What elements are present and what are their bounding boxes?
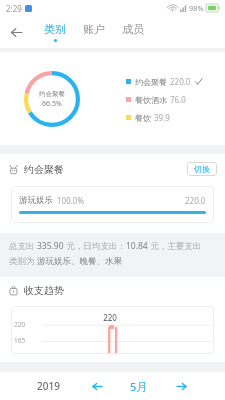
staticText: 76.0 <box>170 94 186 105</box>
button[interactable]: 成员 <box>120 20 146 44</box>
staticText: 220 <box>103 312 117 323</box>
staticText: 游玩娱乐、晚餐、水果 <box>37 256 122 267</box>
button[interactable]: Next month <box>170 375 192 397</box>
staticText: 切换 <box>194 164 210 174</box>
staticText: 元，主要支出 <box>148 240 202 252</box>
staticText: 220.0 <box>185 195 206 206</box>
staticText: 335.90 <box>37 240 64 252</box>
staticText: 约会聚餐 <box>39 90 65 98</box>
staticText: 类别为 <box>9 255 37 267</box>
staticText: 165 <box>14 336 26 345</box>
button[interactable]: 餐饮酒水 <box>126 94 186 105</box>
button[interactable]: Back <box>3 19 29 45</box>
button[interactable]: 游玩娱乐 <box>19 195 206 206</box>
staticText: 约会聚餐 <box>135 77 167 87</box>
staticText: 总支出 <box>9 240 37 252</box>
button[interactable]: Previous month <box>86 375 108 397</box>
staticText: 66.5% <box>42 99 62 109</box>
staticText: 餐饮酒水 <box>135 95 167 105</box>
staticText: 类别 <box>44 22 66 36</box>
button[interactable]: 类别 <box>42 20 68 44</box>
button[interactable]: 切换 <box>187 162 217 176</box>
staticText: 220.0 <box>170 76 191 87</box>
staticText: 元，日均支出： <box>64 240 126 252</box>
staticText: 100.0% <box>57 195 85 206</box>
staticText: 成员 <box>122 22 144 36</box>
staticText: 收支趋势 <box>24 284 64 297</box>
button[interactable]: 餐饮 <box>126 112 170 123</box>
staticText: 220 <box>14 320 26 329</box>
staticText: 约会聚餐 <box>24 163 64 176</box>
button[interactable]: 2019 <box>33 376 64 396</box>
button[interactable]: 账户 <box>81 20 107 44</box>
staticText: 39.9 <box>154 112 170 123</box>
button[interactable]: 约会聚餐 <box>126 76 202 87</box>
button[interactable]: 5月 <box>126 376 152 397</box>
staticText: 餐饮 <box>135 113 151 123</box>
staticText: 98% <box>189 3 204 13</box>
staticText: 游玩娱乐 <box>19 195 53 206</box>
staticText: 10.84 <box>126 240 148 252</box>
staticText: 2:29 <box>6 3 22 14</box>
staticText: 账户 <box>83 22 105 36</box>
